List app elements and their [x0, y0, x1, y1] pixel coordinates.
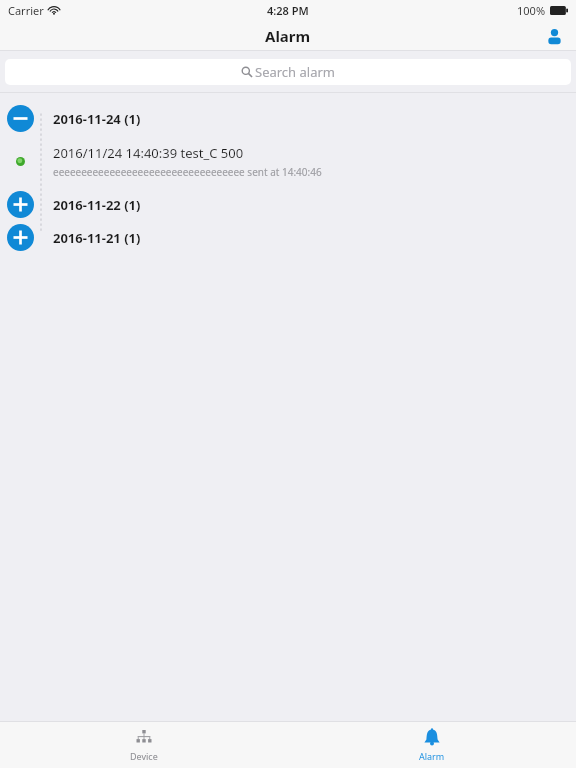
button[interactable]: Search alarm [5, 59, 571, 85]
button[interactable]: Device [0, 722, 288, 768]
button[interactable]: Alarm [288, 722, 576, 768]
staticText: 2016-11-22 (1) [53, 196, 141, 214]
button[interactable]: 2016-11-21 (1) [0, 221, 576, 254]
staticText: Search alarm [255, 63, 335, 81]
button[interactable]: Account [540, 22, 568, 50]
staticText: 2016-11-21 (1) [53, 229, 141, 247]
staticText: 4:28 PM [267, 3, 309, 18]
staticText: Device [130, 750, 158, 762]
staticText: Alarm [265, 26, 311, 46]
staticText: Alarm [419, 750, 445, 762]
button[interactable]: 2016-11-22 (1) [0, 188, 576, 221]
staticText: eeeeeeeeeeeeeeeeeeeeeeeeeeeeeeeeee sent … [53, 165, 322, 179]
staticText: Carrier [8, 3, 44, 18]
staticText: 100% [517, 3, 546, 18]
button[interactable]: 2016/11/24 14:40:39 test_C 500 [0, 135, 576, 188]
button[interactable]: 2016-11-24 (1) [0, 102, 576, 135]
staticText: 2016-11-24 (1) [53, 110, 141, 128]
staticText: 2016/11/24 14:40:39 test_C 500 [53, 144, 244, 162]
